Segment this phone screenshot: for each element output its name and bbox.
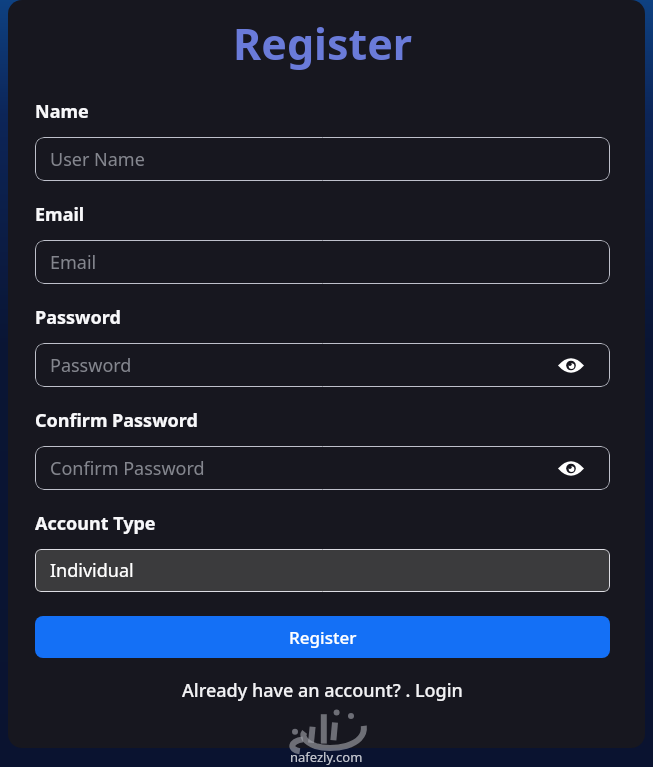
staticText: Confirm Password [50, 456, 558, 481]
staticText: Register [233, 14, 413, 73]
staticText: Password [35, 305, 121, 330]
staticText: Individual [50, 558, 134, 583]
button[interactable]: Confirm Password [35, 446, 610, 490]
staticText: Name [35, 99, 89, 124]
button[interactable]: Register [35, 616, 610, 658]
staticText: Email [50, 250, 610, 275]
button[interactable]: Already have an account? . Login [182, 678, 463, 703]
button[interactable]: Email [35, 240, 610, 284]
staticText: Confirm Password [35, 408, 198, 433]
staticText: User Name [50, 147, 610, 172]
staticText: Password [50, 353, 558, 378]
staticText: Email [35, 202, 85, 227]
staticText: Register [289, 626, 357, 649]
staticText: nafezly.com [290, 748, 363, 766]
button[interactable]: User Name [35, 137, 610, 181]
button[interactable]: Password [35, 343, 610, 387]
button[interactable]: Individual [35, 549, 610, 592]
staticText: Account Type [35, 511, 156, 536]
